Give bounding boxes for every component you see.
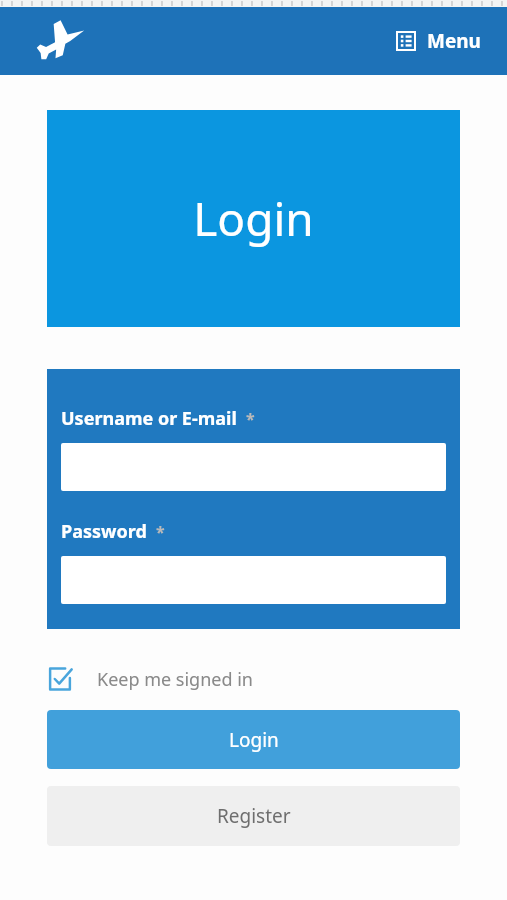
staticText: Login: [193, 187, 314, 250]
button[interactable]: Menu: [392, 22, 485, 60]
staticText: Username or E-mail: [61, 406, 237, 431]
staticText: Password: [61, 519, 147, 544]
button[interactable]: Login: [47, 710, 460, 769]
staticText: Keep me signed in: [97, 667, 253, 692]
button[interactable]: Register: [47, 786, 460, 846]
staticText: *: [246, 408, 255, 430]
staticText: Login: [229, 727, 279, 753]
staticText: Menu: [427, 28, 481, 54]
button[interactable]: Home: [34, 18, 92, 64]
staticText: Register: [217, 803, 291, 829]
staticText: *: [156, 521, 165, 543]
button[interactable]: Keep me signed in: [47, 662, 267, 696]
